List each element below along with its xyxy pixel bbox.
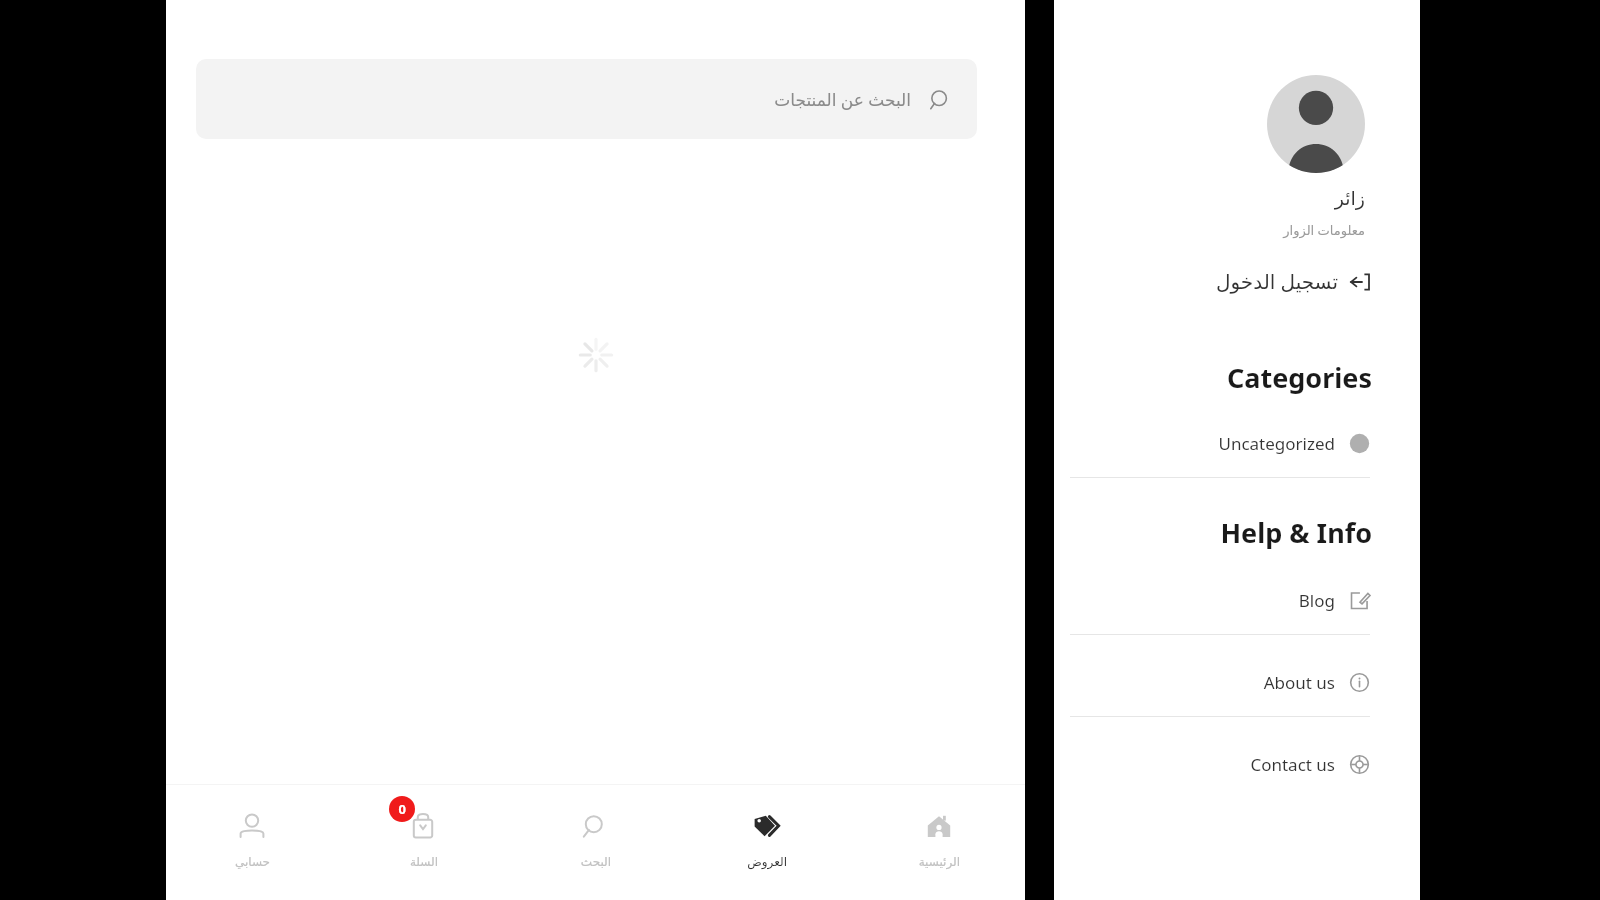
staticText: 0 [398,800,406,818]
staticText: العروض [747,855,787,869]
button[interactable]: Offers [681,785,853,900]
other: Search [575,807,615,847]
staticText: Contact us [1250,753,1335,776]
staticText: السلة [409,855,438,869]
other: Account [232,807,272,847]
button[interactable]: تسجيل الدخول [1054,264,1420,299]
staticText: حسابي [234,855,270,869]
other: About us [1349,672,1370,693]
staticText: زائر [1334,187,1365,209]
other: Contact us [1349,754,1370,775]
button[interactable]: Search [509,785,681,900]
other: Home [919,807,959,847]
staticText: Uncategorized [1218,432,1335,455]
button[interactable]: Home [853,785,1025,900]
other: Cart [403,807,443,847]
button[interactable]: Contact us [1054,747,1420,782]
staticText: الرئيسية [918,855,960,869]
staticText: البحث [580,855,611,869]
staticText: تسجيل الدخول [1215,268,1338,295]
button[interactable]: Account [166,785,337,900]
staticText: Categories [1226,359,1372,396]
staticText: البحث عن المنتجات [774,88,911,111]
staticText: About us [1263,671,1335,694]
button[interactable]: البحث عن المنتجات [196,59,977,139]
button[interactable]: Blog [1054,583,1420,618]
staticText: Help & Info [1220,514,1372,551]
other: Offers [747,807,787,847]
staticText: Blog [1298,589,1335,612]
staticText: معلومات الزوار [1283,221,1365,239]
button[interactable]: Uncategorized [1054,426,1420,461]
button[interactable]: Cart [337,785,509,900]
other: Blog [1349,590,1370,611]
button[interactable]: About us [1054,665,1420,700]
button[interactable]: Profile picture [1267,75,1365,173]
